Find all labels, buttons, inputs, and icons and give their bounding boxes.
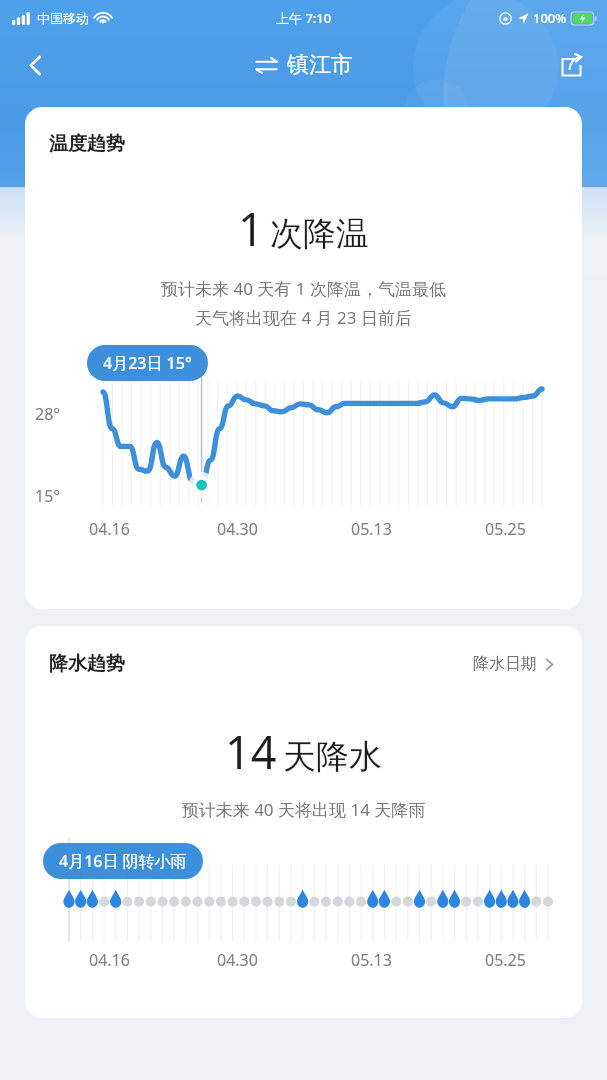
staticText: 05.25 [485, 949, 526, 971]
staticText: 降水日期 [473, 654, 537, 674]
button[interactable]: Share [549, 43, 593, 87]
button[interactable]: 降水日期 [469, 651, 558, 677]
staticText: 05.13 [351, 949, 392, 971]
staticText: 28° [35, 403, 61, 425]
staticText: 天降水 [283, 736, 382, 778]
staticText: 4月23日 15° [103, 352, 192, 374]
staticText: 温度趋势 [49, 132, 125, 156]
staticText: 05.25 [485, 518, 526, 540]
button[interactable]: 4月23日 15° [87, 345, 208, 381]
staticText: 中国移动 [37, 10, 89, 26]
staticText: 4月16日 阴转小雨 [59, 850, 187, 872]
staticText: 04.16 [89, 518, 130, 540]
staticText: 预计未来 40 天有 1 次降温，气温最低 天气将出现在 4 月 23 日前后 [41, 277, 566, 329]
staticText: 镇江市 [287, 51, 353, 79]
staticText: 次降温 [270, 213, 369, 255]
staticText: 05.13 [351, 518, 392, 540]
staticText: 预计未来 40 天将出现 14 天降雨 [25, 798, 582, 821]
staticText: 04.30 [217, 949, 258, 971]
button[interactable]: 镇江市 [249, 47, 359, 83]
button[interactable]: 温度趋势 [25, 107, 582, 609]
button[interactable]: 4月16日 阴转小雨 [43, 843, 203, 879]
staticText: 04.16 [89, 949, 130, 971]
staticText: 1 [238, 198, 264, 259]
staticText: 04.30 [217, 518, 258, 540]
staticText: 14 [225, 721, 277, 782]
button[interactable]: Back [12, 42, 58, 88]
staticText: 降水趋势 [49, 652, 125, 676]
staticText: 上午 7:10 [276, 9, 332, 27]
staticText: 100% [533, 9, 567, 27]
staticText: 15° [35, 485, 61, 507]
